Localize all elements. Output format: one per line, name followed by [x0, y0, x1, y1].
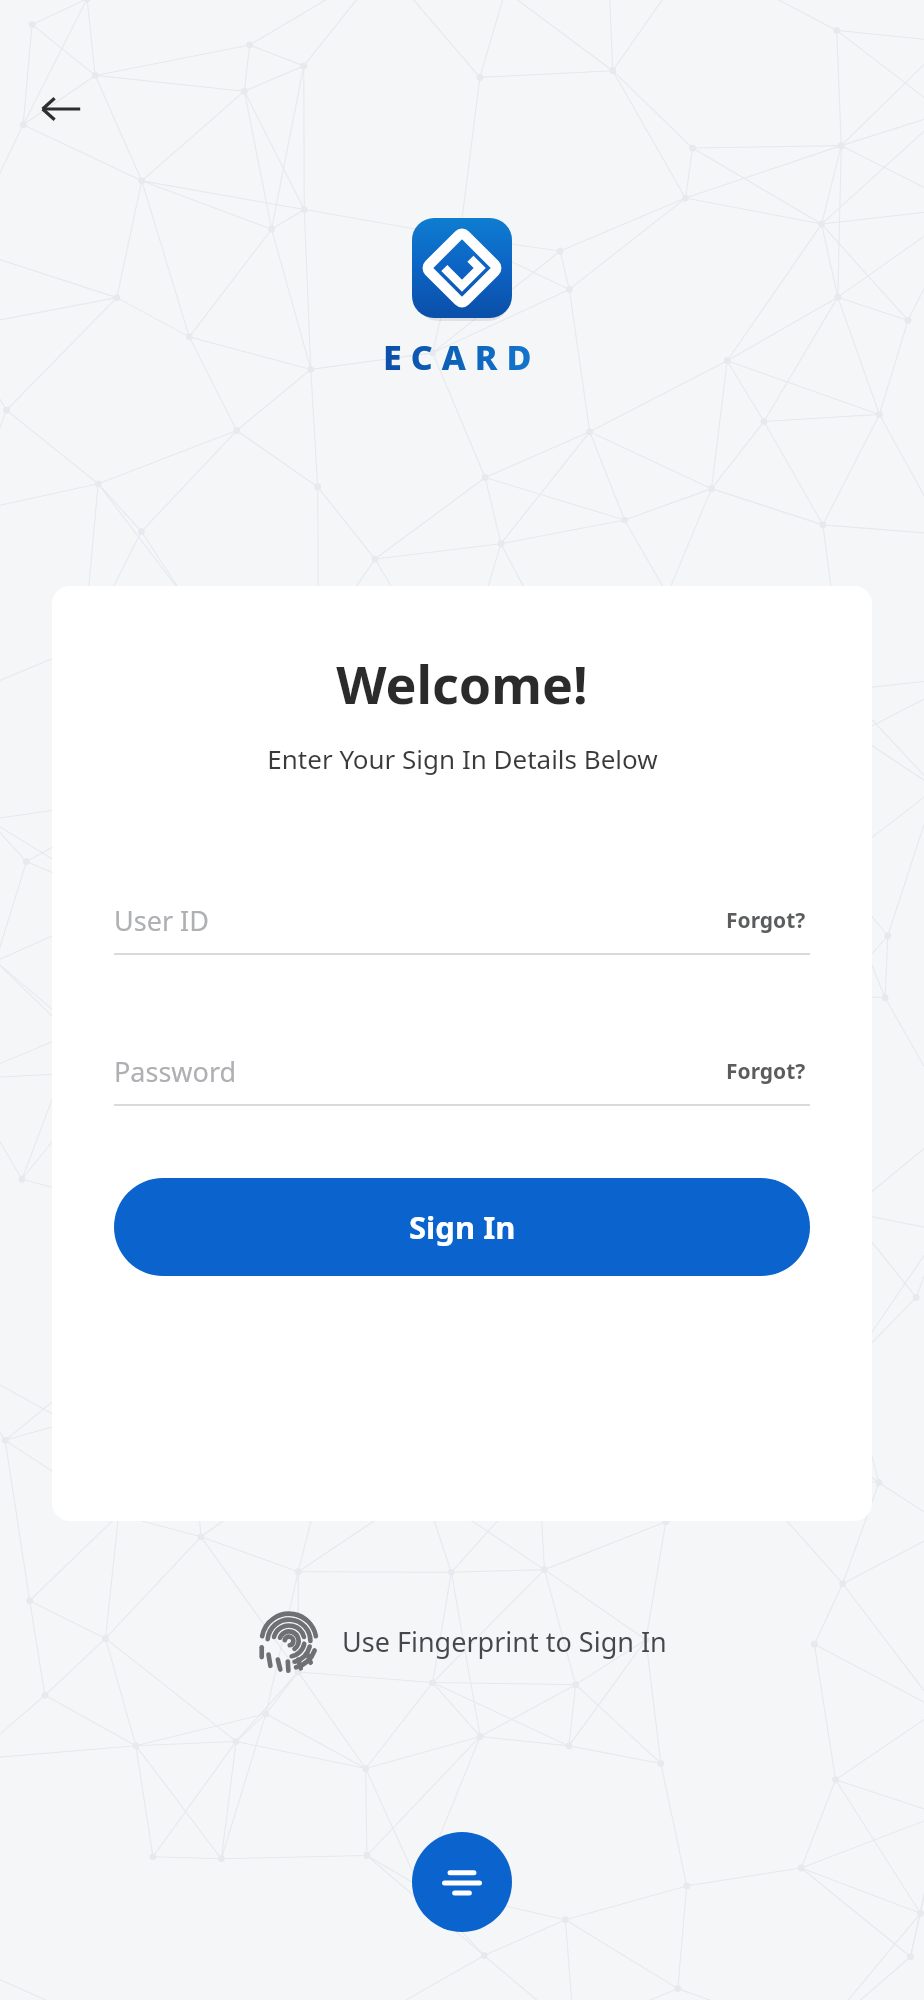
- button[interactable]: Use Fingerprint to Sign In: [248, 1602, 677, 1680]
- staticText: ECARD: [383, 334, 541, 380]
- staticText: Forgot?: [726, 906, 806, 935]
- button[interactable]: Forgot?: [722, 904, 810, 937]
- staticText: Welcome!: [336, 648, 588, 719]
- button[interactable]: User ID: [114, 902, 810, 953]
- staticText: Sign In: [409, 1206, 516, 1248]
- button[interactable]: Back: [30, 78, 92, 140]
- button[interactable]: Menu: [412, 1832, 512, 1932]
- staticText: Forgot?: [726, 1057, 806, 1086]
- button[interactable]: Password: [114, 1053, 810, 1104]
- staticText: Enter Your Sign In Details Below: [267, 741, 658, 776]
- staticText: Password: [114, 1053, 722, 1090]
- button[interactable]: Sign In: [114, 1178, 810, 1276]
- staticText: Use Fingerprint to Sign In: [342, 1623, 667, 1660]
- button[interactable]: Forgot?: [722, 1055, 810, 1088]
- staticText: User ID: [114, 902, 722, 939]
